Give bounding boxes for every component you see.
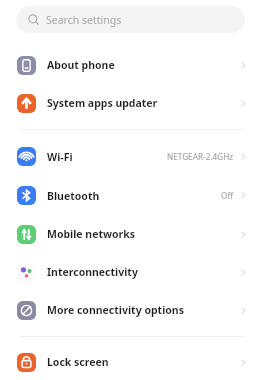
staticText: Mobile networks bbox=[47, 227, 136, 241]
button[interactable]: More connectivity options bbox=[0, 291, 261, 329]
staticText: NETGEAR-2.4GHz bbox=[167, 151, 234, 162]
staticText: Lock screen bbox=[47, 355, 109, 369]
staticText: Interconnectivity bbox=[47, 265, 138, 279]
button[interactable]: Lock screen bbox=[0, 344, 261, 380]
staticText: Search settings bbox=[46, 13, 122, 27]
button[interactable]: Interconnectivity bbox=[0, 253, 261, 291]
button[interactable]: About phone bbox=[0, 46, 261, 84]
button[interactable]: Wi-Fi bbox=[0, 137, 261, 176]
staticText: Bluetooth bbox=[47, 189, 100, 203]
button[interactable]: System apps updater bbox=[0, 84, 261, 122]
staticText: More connectivity options bbox=[47, 303, 184, 317]
staticText: Off bbox=[221, 190, 234, 201]
button[interactable]: Search settings bbox=[16, 6, 245, 33]
staticText: System apps updater bbox=[47, 96, 158, 110]
staticText: Wi-Fi bbox=[47, 150, 73, 164]
staticText: About phone bbox=[47, 58, 115, 72]
button[interactable]: Bluetooth bbox=[0, 176, 261, 215]
button[interactable]: Mobile networks bbox=[0, 215, 261, 253]
